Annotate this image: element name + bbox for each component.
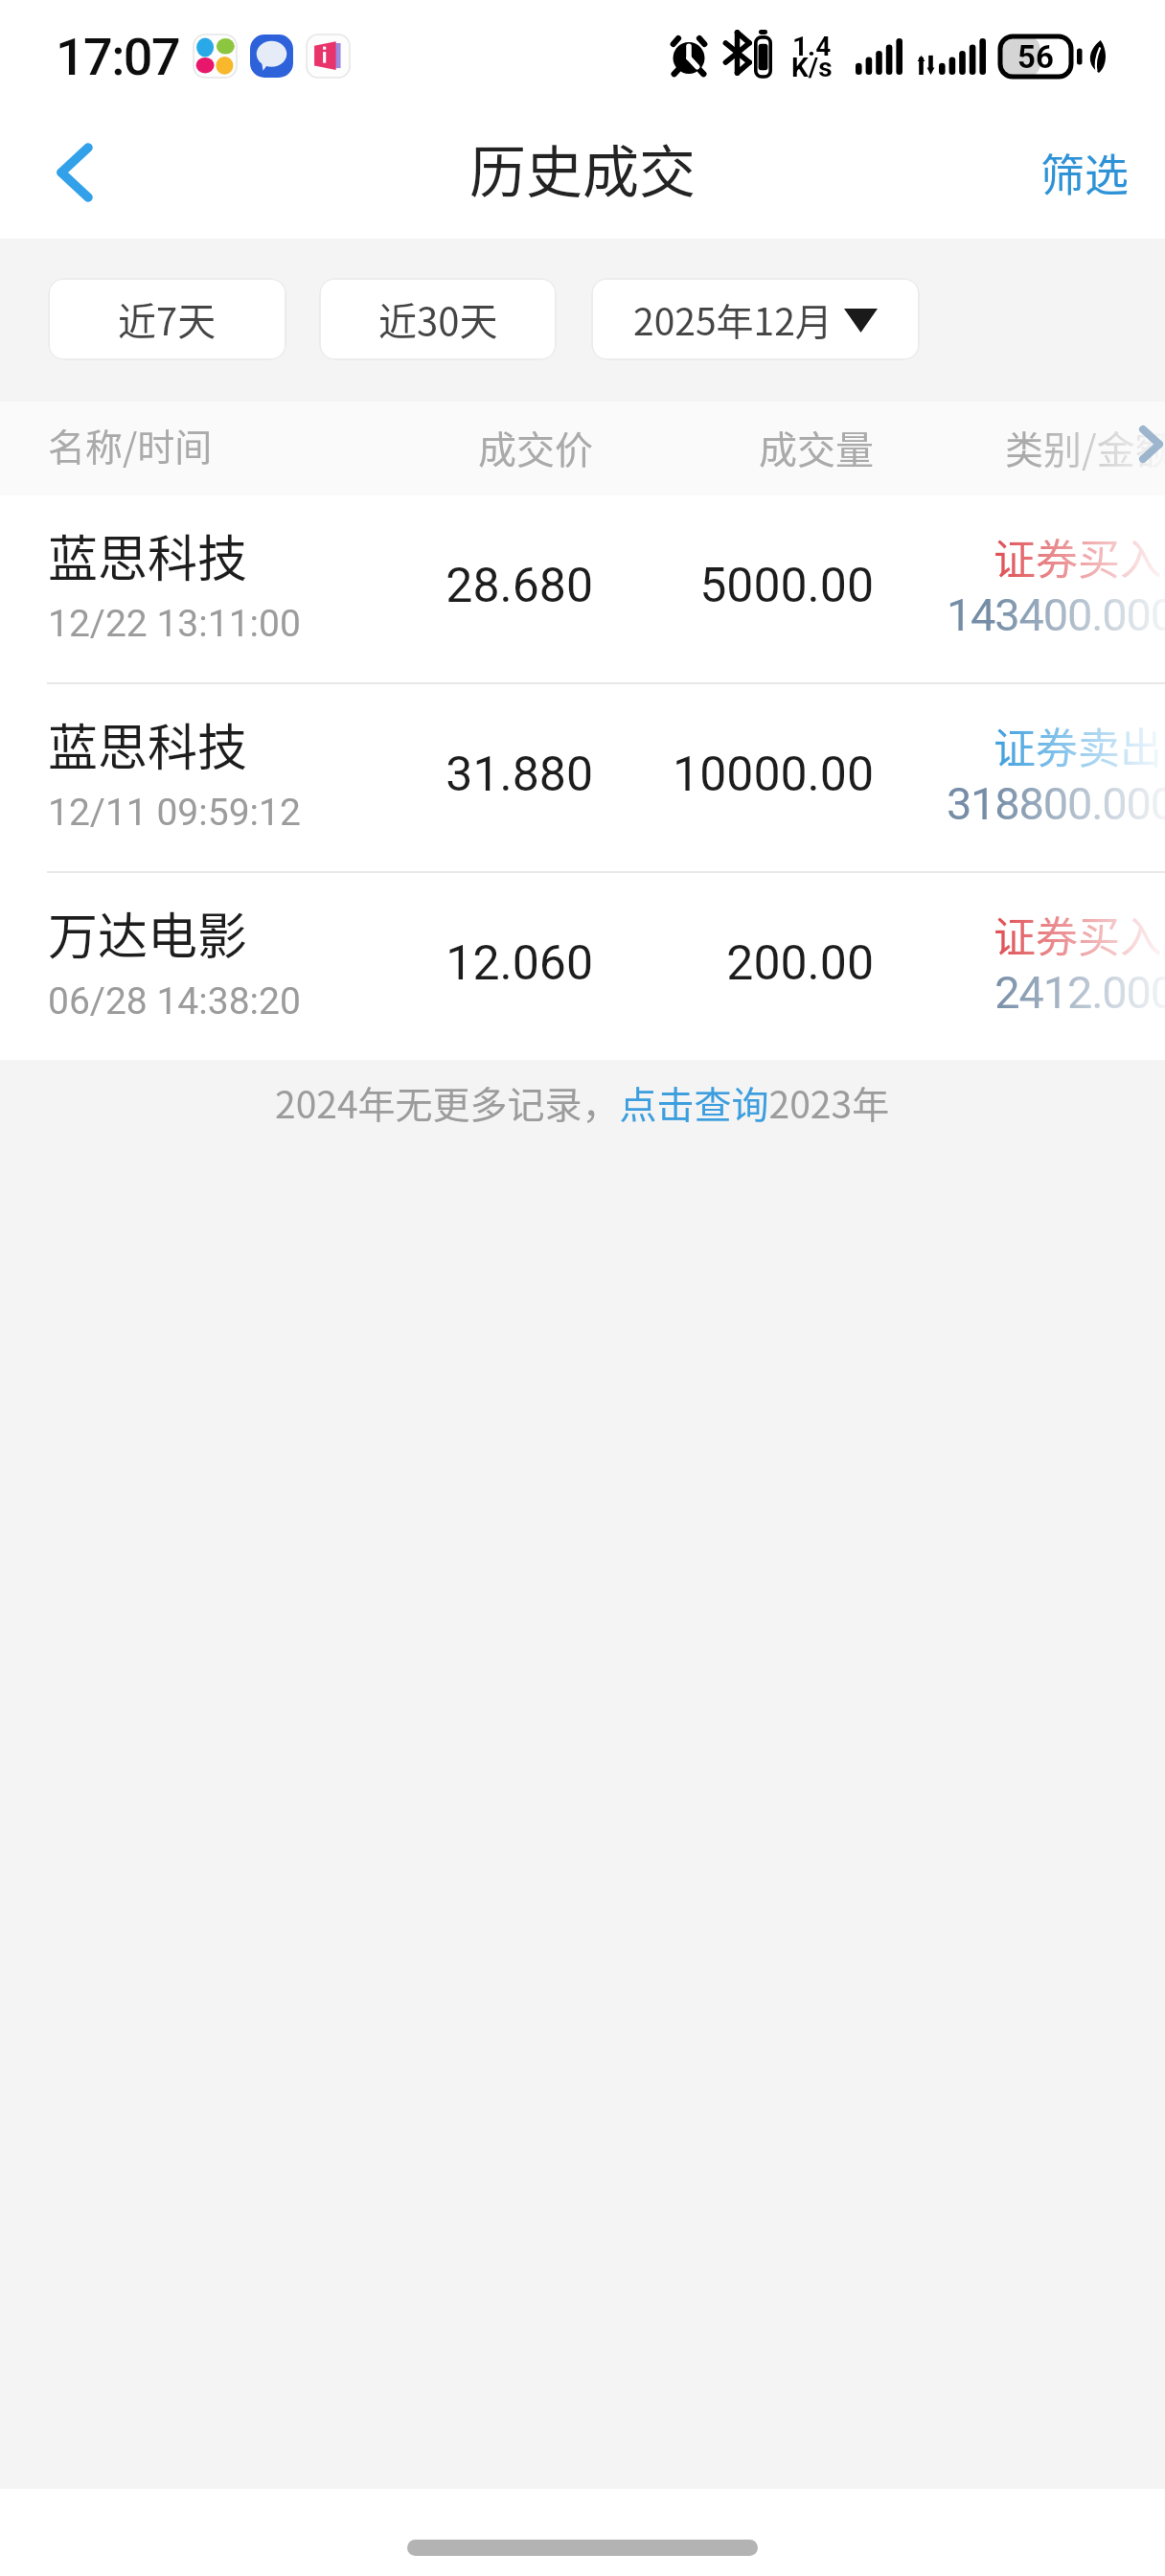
staticText: 证券买入 (994, 904, 1162, 965)
staticText: 31.880 (401, 747, 593, 803)
button[interactable]: 蓝思科技 (0, 684, 1165, 871)
staticText: 蓝思科技 (48, 708, 248, 780)
staticText: 名称/时间 (48, 418, 213, 471)
staticText: 2024年无更多记录，点击查询2023年 (275, 1075, 890, 1129)
staticText: 成交价 (401, 420, 593, 475)
staticText: 筛选 (1040, 140, 1129, 204)
staticText: 56 (1017, 38, 1054, 76)
staticText: 历史成交 (469, 127, 697, 209)
staticText: 5000.00 (625, 558, 874, 614)
staticText: 12/11 09:59:12 (48, 791, 301, 835)
button[interactable]: More columns (1139, 425, 1163, 463)
staticText: 2412.000 (862, 966, 1165, 1019)
staticText: 1.4 (792, 31, 832, 62)
button[interactable]: 2024年无更多记录，点击查询2023年 (256, 1058, 909, 1146)
staticText: 12.060 (401, 935, 593, 992)
staticText: 成交量 (625, 420, 874, 475)
staticText: 万达电影 (48, 897, 248, 969)
staticText: 143400.000 (862, 588, 1165, 641)
button[interactable]: 2025年12月 (591, 278, 920, 360)
staticText: 近30天 (378, 291, 498, 347)
staticText: 蓝思科技 (48, 519, 248, 591)
staticText: 近7天 (118, 291, 217, 347)
staticText: 证券卖出 (994, 715, 1162, 776)
staticText: 28.680 (401, 558, 593, 614)
staticText: 10000.00 (625, 747, 874, 803)
button[interactable]: Back (0, 105, 144, 239)
staticText: 类别/金额 (1005, 420, 1165, 475)
staticText: 17:07 (56, 27, 180, 87)
staticText: 2025年12月 (633, 292, 833, 346)
button[interactable]: 蓝思科技 (0, 495, 1165, 682)
staticText: 200.00 (625, 935, 874, 992)
button[interactable]: 近7天 (48, 278, 286, 360)
staticText: 318800.000 (862, 777, 1165, 830)
staticText: 证券买入 (994, 526, 1162, 587)
button[interactable]: 筛选 (1004, 115, 1165, 229)
staticText: 12/22 13:11:00 (48, 602, 301, 646)
staticText: 06/28 14:38:20 (48, 979, 301, 1023)
button[interactable]: 近30天 (319, 278, 557, 360)
button[interactable]: 万达电影 (0, 873, 1165, 1060)
staticText: K/s (791, 52, 833, 83)
